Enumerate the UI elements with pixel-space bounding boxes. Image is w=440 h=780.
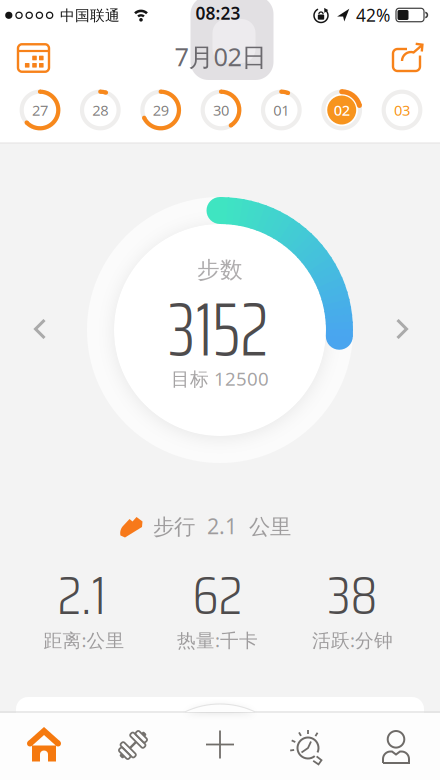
button[interactable]: Day 30 [198,87,244,133]
button[interactable]: Home [13,718,75,774]
button[interactable]: Day 29 [138,87,184,133]
button[interactable]: Share [386,37,430,79]
staticText: 中国联通 [60,6,120,24]
button[interactable]: AssistiveTouch [190,0,273,82]
button[interactable]: Next day [382,301,422,357]
button[interactable]: Day 03 [379,87,425,133]
staticText: 38 [327,552,377,638]
staticText: 29 [153,100,169,120]
staticText: 62 [192,552,242,638]
staticText: 42% [356,3,390,26]
button[interactable]: Tips [279,719,341,775]
button[interactable]: Previous day [20,301,60,357]
button[interactable]: Profile [365,719,427,775]
staticText: 01 [273,100,289,120]
button[interactable]: Day 27 [17,87,63,133]
button[interactable]: Workouts [102,717,164,773]
staticText: 02 [334,100,350,120]
button[interactable]: Day 01 [258,87,304,133]
staticText: 28 [92,100,108,120]
staticText: 27 [32,100,48,120]
button[interactable]: Calendar [11,37,55,79]
staticText: 7月02日 [174,40,266,73]
staticText: 步数 [197,256,243,284]
staticText: 3152 [168,271,268,388]
button[interactable]: Day 02 [319,87,365,133]
button[interactable]: Add [185,709,255,779]
staticText: 距离:公里 [43,628,124,652]
staticText: 步行 2.1 公里 [153,512,291,540]
staticText: 2.1 [57,552,106,638]
staticText: 热量:千卡 [177,628,258,652]
staticText: 30 [213,100,229,120]
staticText: 08:23 [195,1,240,24]
staticText: 目标 12500 [171,366,269,391]
staticText: 活跃:分钟 [312,628,393,652]
button[interactable]: Day 28 [77,87,123,133]
staticText: 03 [394,100,410,120]
